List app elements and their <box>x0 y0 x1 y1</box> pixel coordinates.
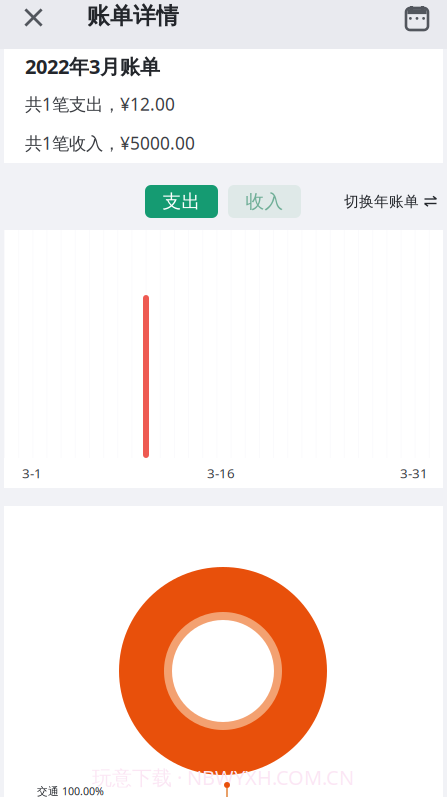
staticText: 支出 <box>162 190 200 213</box>
staticText: 共1笔收入，¥5000.00 <box>25 132 195 155</box>
button[interactable]: 切换年账单 <box>344 184 437 218</box>
staticText: 共1笔支出，¥12.00 <box>25 93 175 116</box>
staticText: 2022年3月账单 <box>25 53 160 80</box>
button[interactable]: 支出 <box>145 185 218 218</box>
staticText: 收入 <box>245 190 283 213</box>
staticText: 玩意下载 · NBWYXH.COM.CN <box>92 764 354 791</box>
staticText: 账单详情 <box>87 2 179 30</box>
button[interactable]: 收入 <box>228 185 301 218</box>
staticText: 3-16 <box>207 464 235 482</box>
staticText: 交通 100.00% <box>37 784 104 797</box>
button[interactable]: Close <box>0 0 61 49</box>
staticText: 3-31 <box>400 464 428 482</box>
button[interactable]: Calendar <box>395 0 447 49</box>
staticText: 3-1 <box>22 464 42 482</box>
staticText: 切换年账单 <box>344 192 419 210</box>
